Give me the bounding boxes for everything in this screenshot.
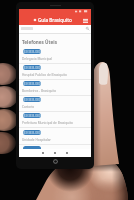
button[interactable] (23, 146, 41, 151)
staticText: (33) 3333-3333 (23, 98, 41, 102)
staticText: Cartorio (22, 105, 35, 109)
staticText: Unidade Hospitalar (22, 138, 51, 142)
button[interactable]: Home (53, 151, 57, 155)
button[interactable]: Back (41, 151, 45, 155)
staticText: Bombeiros - Brasiquito (22, 89, 57, 93)
button[interactable]: Search (19, 25, 91, 33)
staticText: Hospital Publico de Brasiquito (22, 73, 67, 77)
staticText: (33) 3333-3333 (23, 82, 41, 86)
button[interactable]: (33) 3333-3333 (19, 81, 91, 97)
button[interactable]: (33) 3333-3333 (19, 130, 91, 146)
button[interactable]: Open menu (83, 18, 88, 23)
other: Search (86, 27, 89, 30)
button[interactable]: (33) 3333-3333 (19, 65, 91, 81)
staticText: (33) 3333-3333 (23, 50, 41, 54)
staticText: (33) 3333-3333 (23, 66, 41, 70)
staticText: Prefeitura Municipal de Brasiquito (22, 121, 73, 125)
staticText: Telefones Úteis (22, 39, 57, 45)
staticText: Delegacia Municipal (22, 57, 53, 61)
staticText: Guia Brasiquito (38, 17, 72, 23)
button[interactable]: (33) 3333-3333 (19, 97, 91, 113)
button[interactable]: (33) 3333-3333 (19, 49, 91, 65)
staticText: (33) 3333-3333 (23, 114, 41, 118)
staticText: (33) 3333-3333 (23, 131, 41, 135)
button[interactable]: (33) 3333-3333 (19, 113, 91, 129)
button[interactable]: Recents (65, 151, 69, 155)
